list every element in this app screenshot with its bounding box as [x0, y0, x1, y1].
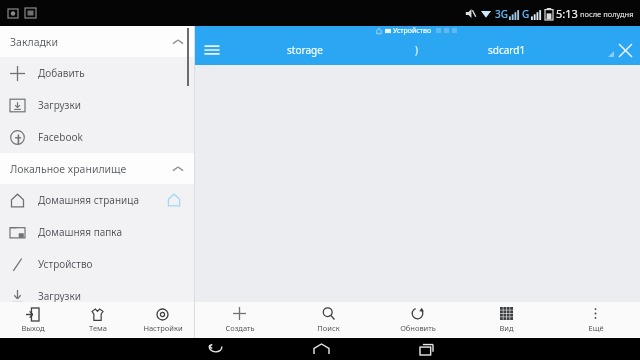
- button[interactable]: Локальное хранилище: [0, 153, 195, 184]
- staticText: Facebook: [38, 130, 83, 144]
- button[interactable]: Настройки: [130, 302, 195, 338]
- button[interactable]: Создать: [195, 302, 284, 338]
- button[interactable]: Вид: [462, 302, 551, 338]
- button[interactable]: Загрузки: [0, 280, 195, 312]
- button[interactable]: Facebook: [0, 121, 195, 153]
- button[interactable]: Поиск: [284, 302, 373, 338]
- staticText: Закладки: [10, 35, 58, 49]
- staticText: 5:13: [556, 6, 578, 21]
- button[interactable]: Home: [308, 338, 334, 360]
- staticText: Добавить: [38, 66, 85, 80]
- button[interactable]: Menu: [199, 37, 225, 63]
- staticText: Создать: [225, 323, 255, 333]
- button[interactable]: Close: [613, 38, 637, 62]
- staticText: Загрузки: [38, 289, 81, 303]
- staticText: Ещё: [588, 323, 604, 333]
- staticText: Домашняя папка: [38, 225, 123, 239]
- staticText: Локальное хранилище: [10, 162, 127, 176]
- staticText: 3G: [495, 7, 508, 21]
- staticText: G: [522, 7, 530, 21]
- button[interactable]: Добавить: [0, 57, 195, 89]
- button[interactable]: Back: [202, 338, 228, 360]
- button[interactable]: Загрузки: [0, 89, 195, 121]
- button[interactable]: Ещё: [551, 302, 640, 338]
- button[interactable]: storage: [287, 43, 323, 57]
- button[interactable]: sdcard1: [488, 43, 526, 57]
- staticText: Вид: [499, 323, 514, 333]
- staticText: Устройство: [38, 257, 93, 271]
- staticText: ): [415, 43, 418, 57]
- button[interactable]: Закладки: [0, 26, 195, 57]
- staticText: Загрузки: [38, 98, 81, 112]
- button[interactable]: Домашняя папка: [0, 216, 195, 248]
- staticText: Обновить: [400, 323, 436, 333]
- button[interactable]: Тема: [65, 302, 130, 338]
- button[interactable]: Recents: [413, 338, 439, 360]
- button[interactable]: Устройство: [0, 248, 195, 280]
- staticText: Поиск: [317, 323, 340, 333]
- staticText: Выход: [21, 323, 45, 333]
- staticText: Устройство: [393, 26, 432, 35]
- button[interactable]: Обновить: [373, 302, 462, 338]
- button[interactable]: Домашняя страница: [0, 184, 195, 216]
- staticText: Настройки: [143, 323, 183, 333]
- button[interactable]: Выход: [0, 302, 65, 338]
- staticText: после полудня: [580, 9, 634, 19]
- staticText: Тема: [89, 323, 107, 333]
- staticText: Домашняя страница: [38, 193, 139, 207]
